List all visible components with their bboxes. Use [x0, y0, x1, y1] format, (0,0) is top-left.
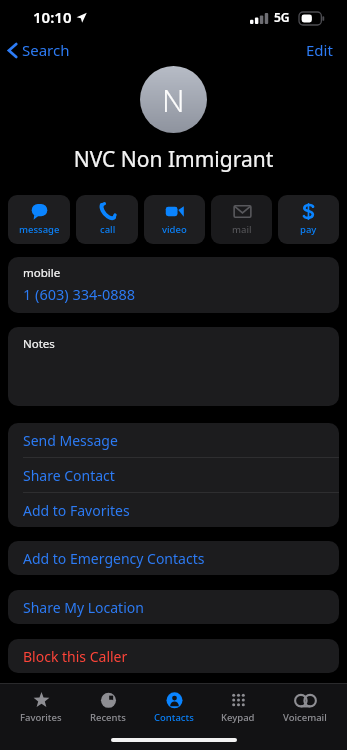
staticText: 5G	[274, 9, 290, 25]
button[interactable]: message	[8, 195, 70, 244]
staticText: Notes	[23, 336, 55, 352]
staticText: video	[162, 223, 187, 236]
button[interactable]: call	[76, 195, 138, 244]
button[interactable]: Search	[0, 36, 78, 64]
staticText: Share My Location	[23, 598, 144, 617]
button[interactable]: Edit	[292, 36, 347, 64]
staticText: Add to Emergency Contacts	[23, 549, 205, 568]
button[interactable]: mail	[211, 195, 272, 244]
staticText: Voicemail	[283, 711, 327, 724]
button[interactable]: Add to Emergency Contacts	[8, 541, 339, 575]
button[interactable]: Notes	[8, 327, 339, 406]
button[interactable]: Share My Location	[8, 590, 339, 624]
staticText: 10:10	[33, 7, 72, 27]
staticText: Search	[22, 40, 70, 60]
button[interactable]: pay	[278, 195, 339, 244]
staticText: call	[100, 223, 116, 236]
staticText: Add to Favorites	[23, 501, 130, 520]
button[interactable]: Contacts	[146, 690, 202, 726]
staticText: Share Contact	[23, 466, 115, 485]
button[interactable]: Favorites	[12, 690, 70, 726]
button[interactable]: mobile	[8, 257, 339, 313]
staticText: Send Message	[23, 431, 118, 450]
staticText: pay	[300, 223, 317, 236]
button[interactable]: Voicemail	[275, 690, 335, 726]
button[interactable]: Keypad	[213, 690, 263, 726]
staticText: 1 (603) 334-0888	[23, 284, 136, 304]
button[interactable]: Recents	[82, 690, 134, 726]
button[interactable]: Block this Caller	[8, 639, 339, 673]
staticText: mail	[232, 223, 252, 236]
button[interactable]: Add to Favorites	[8, 493, 339, 527]
staticText: Favorites	[20, 711, 62, 724]
staticText: mobile	[23, 265, 61, 281]
staticText: N	[162, 79, 185, 121]
button[interactable]: N	[140, 66, 207, 133]
button[interactable]: video	[144, 195, 205, 244]
staticText: Block this Caller	[23, 647, 128, 666]
staticText: Keypad	[221, 711, 255, 724]
staticText: NVC Non Immigrant	[0, 145, 347, 174]
staticText: Recents	[90, 711, 126, 724]
staticText: Edit	[306, 40, 333, 60]
button[interactable]: Share Contact	[8, 458, 339, 492]
button[interactable]: Send Message	[8, 423, 339, 457]
staticText: message	[19, 223, 60, 236]
staticText: Contacts	[154, 711, 194, 724]
